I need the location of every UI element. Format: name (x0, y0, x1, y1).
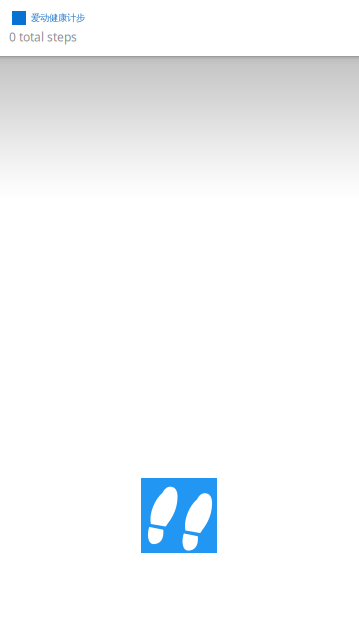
button[interactable]: 爱动健康计步 (12, 11, 359, 25)
button[interactable]: 爱动健康计步 — open step tracker (141, 478, 217, 553)
staticText: 0 total steps (9, 29, 77, 45)
staticText: 爱动健康计步 (31, 12, 85, 24)
